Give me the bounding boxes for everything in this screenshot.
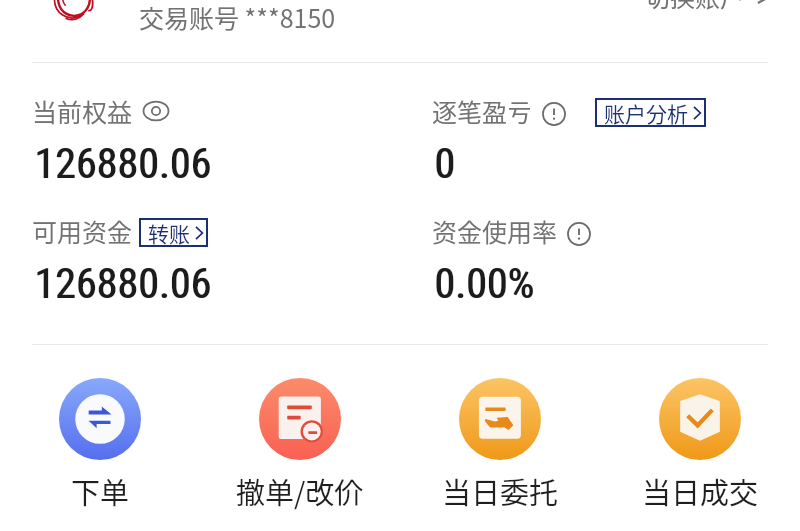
button[interactable]: 下单 [15, 370, 185, 518]
staticText: 126880.06 [35, 259, 212, 308]
staticText: 当前权益 [32, 93, 133, 129]
button[interactable]: 当日委托 [415, 370, 585, 518]
staticText: 0.00% [435, 259, 535, 308]
staticText: 资金使用率 [432, 213, 558, 249]
staticText: 当日委托 [442, 470, 559, 512]
staticText: 切换账户 [645, 0, 746, 14]
button[interactable]: Toggle balance visibility [142, 97, 170, 125]
staticText: 转账 [148, 218, 190, 247]
staticText: 126880.06 [34, 259, 211, 308]
staticText: 当日成交 [642, 470, 759, 512]
button[interactable]: 切换账户 [645, 0, 772, 14]
staticText: 下单 [71, 470, 130, 512]
staticText: 0 [434, 139, 455, 188]
button[interactable]: 当日成交 [615, 370, 785, 518]
button[interactable]: 账户分析 [595, 98, 706, 127]
staticText: 126880.06 [34, 139, 211, 188]
button[interactable]: 撤单/改价 [215, 370, 385, 518]
button[interactable]: Usage info [566, 218, 592, 244]
staticText: 交易账号 ***8150 [139, 0, 336, 35]
staticText: 可用资金 [32, 213, 133, 249]
button[interactable]: 转账 [139, 218, 208, 247]
staticText: 逐笔盈亏 [432, 93, 533, 129]
button[interactable]: Profit info [541, 98, 567, 124]
staticText: 撤单/改价 [236, 470, 364, 512]
staticText: 0 [435, 139, 456, 188]
staticText: 126880.06 [35, 139, 212, 188]
staticText: 账户分析 [604, 98, 688, 127]
staticText: 0.00% [434, 259, 534, 308]
